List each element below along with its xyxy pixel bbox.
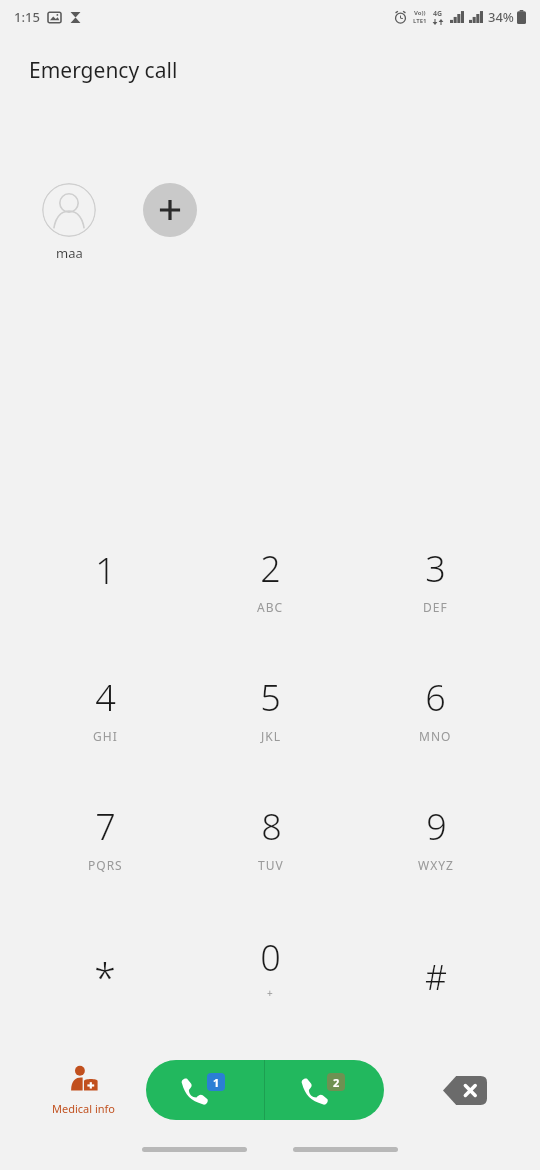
button[interactable]: * (22, 902, 188, 1031)
staticText: 1 (95, 546, 116, 595)
button[interactable]: 8 (188, 773, 353, 902)
staticText: 3 (425, 544, 446, 593)
button[interactable]: 1 (22, 515, 188, 644)
button[interactable]: Call with SIM 1 (146, 1060, 264, 1120)
button[interactable]: Add emergency contact (143, 183, 197, 237)
staticText: 2 (260, 544, 281, 593)
staticText: maa (56, 244, 83, 262)
staticText: 1 (213, 1075, 220, 1090)
button[interactable]: # (353, 902, 518, 1031)
staticText: 5 (260, 673, 281, 722)
button[interactable] (42, 183, 96, 237)
staticText: 1:15 (14, 8, 40, 26)
staticText: ABC (257, 599, 284, 615)
button[interactable]: 0 (188, 902, 353, 1031)
staticText: TUV (258, 857, 284, 873)
button[interactable]: 6 (353, 644, 518, 773)
staticText: PQRS (88, 857, 123, 873)
staticText: 4 (95, 673, 116, 722)
staticText: Vo)) (414, 9, 426, 17)
staticText: 7 (95, 802, 116, 851)
staticText: JKL (261, 728, 281, 744)
button[interactable]: 7 (22, 773, 188, 902)
staticText: MNO (419, 728, 452, 744)
button[interactable]: 2 (188, 515, 353, 644)
staticText: GHI (93, 728, 118, 744)
staticText: # (425, 954, 447, 1000)
staticText: 6 (425, 673, 446, 722)
button[interactable]: 9 (353, 773, 518, 902)
button[interactable]: 4 (22, 644, 188, 773)
button[interactable]: 3 (353, 515, 518, 644)
staticText: * (94, 950, 117, 1004)
button[interactable]: 5 (188, 644, 353, 773)
staticText: 34% (488, 8, 514, 26)
staticText: 2 (333, 1075, 340, 1090)
staticText: 4G (433, 9, 443, 19)
button[interactable]: Medical info (52, 1064, 116, 1116)
button[interactable]: Delete (437, 1070, 493, 1110)
staticText: 8 (261, 802, 282, 851)
staticText: WXYZ (418, 857, 454, 873)
staticText: Emergency call (29, 56, 178, 85)
staticText: 0 (260, 933, 281, 982)
staticText: 9 (426, 802, 447, 851)
staticText: Medical info (52, 1101, 116, 1116)
staticText: DEF (423, 599, 448, 615)
staticText: LTE1 (413, 17, 427, 25)
button[interactable]: Call with SIM 2 (265, 1060, 384, 1120)
staticText: + (267, 986, 274, 1000)
